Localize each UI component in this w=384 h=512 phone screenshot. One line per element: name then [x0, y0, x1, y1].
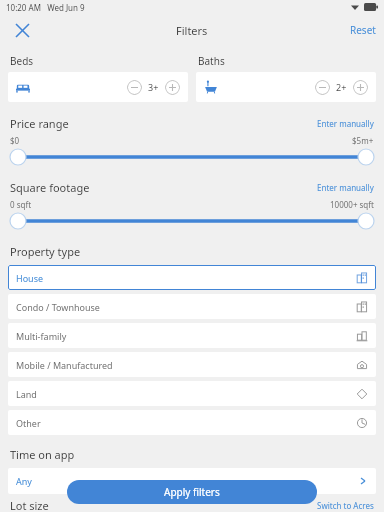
staticText: Lot size [10, 498, 49, 512]
button[interactable]: Enter manually [317, 182, 374, 193]
staticText: $0 [10, 135, 20, 146]
button[interactable]: Close [8, 16, 36, 44]
staticText: Filters [176, 23, 208, 38]
staticText: 10:20 AM Wed Jun 9 [6, 2, 85, 13]
staticText: Reset [350, 23, 376, 37]
staticText: House [16, 272, 44, 284]
button[interactable]: Land [8, 381, 376, 406]
staticText: Apply filters [164, 485, 220, 499]
staticText: Any [16, 475, 32, 487]
staticText: Condo / Townhouse [16, 301, 100, 313]
button[interactable]: Increase [353, 80, 368, 95]
staticText: Multi-family [16, 330, 67, 342]
button[interactable]: Reset [350, 23, 376, 37]
staticText: Switch to Acres [317, 500, 374, 511]
button[interactable]: Increase [165, 80, 180, 95]
staticText: Baths [198, 54, 225, 68]
button[interactable]: Any [8, 468, 376, 494]
staticText: Land [16, 388, 37, 400]
button[interactable]: Mobile / Manufactured [8, 352, 376, 377]
staticText: Enter manually [317, 182, 374, 193]
staticText: $5m+ [352, 135, 374, 146]
button[interactable]: Switch to Acres [317, 500, 374, 511]
staticText: Time on app [10, 447, 75, 462]
staticText: Enter manually [317, 118, 374, 129]
staticText: Mobile / Manufactured [16, 359, 113, 371]
staticText: 3+ [148, 81, 159, 93]
button[interactable] [10, 212, 374, 230]
staticText: 0 sqft [10, 199, 32, 210]
button[interactable]: Other [8, 410, 376, 435]
staticText: Beds [10, 54, 34, 68]
button[interactable]: Multi-family [8, 323, 376, 348]
button[interactable]: Enter manually [317, 118, 374, 129]
staticText: Other [16, 417, 41, 429]
staticText: Property type [10, 244, 81, 259]
button[interactable]: Decrease [127, 80, 142, 95]
staticText: Price range [10, 116, 69, 131]
button[interactable]: Decrease [8, 72, 188, 102]
button[interactable]: House [8, 265, 376, 290]
button[interactable]: Decrease [196, 72, 376, 102]
staticText: 2+ [336, 81, 347, 93]
staticText: 10000+ sqft [330, 199, 374, 210]
button[interactable]: Apply filters [67, 480, 317, 504]
button[interactable]: Condo / Townhouse [8, 294, 376, 319]
staticText: Square footage [10, 180, 90, 195]
button[interactable] [10, 148, 374, 166]
button[interactable]: Decrease [315, 80, 330, 95]
